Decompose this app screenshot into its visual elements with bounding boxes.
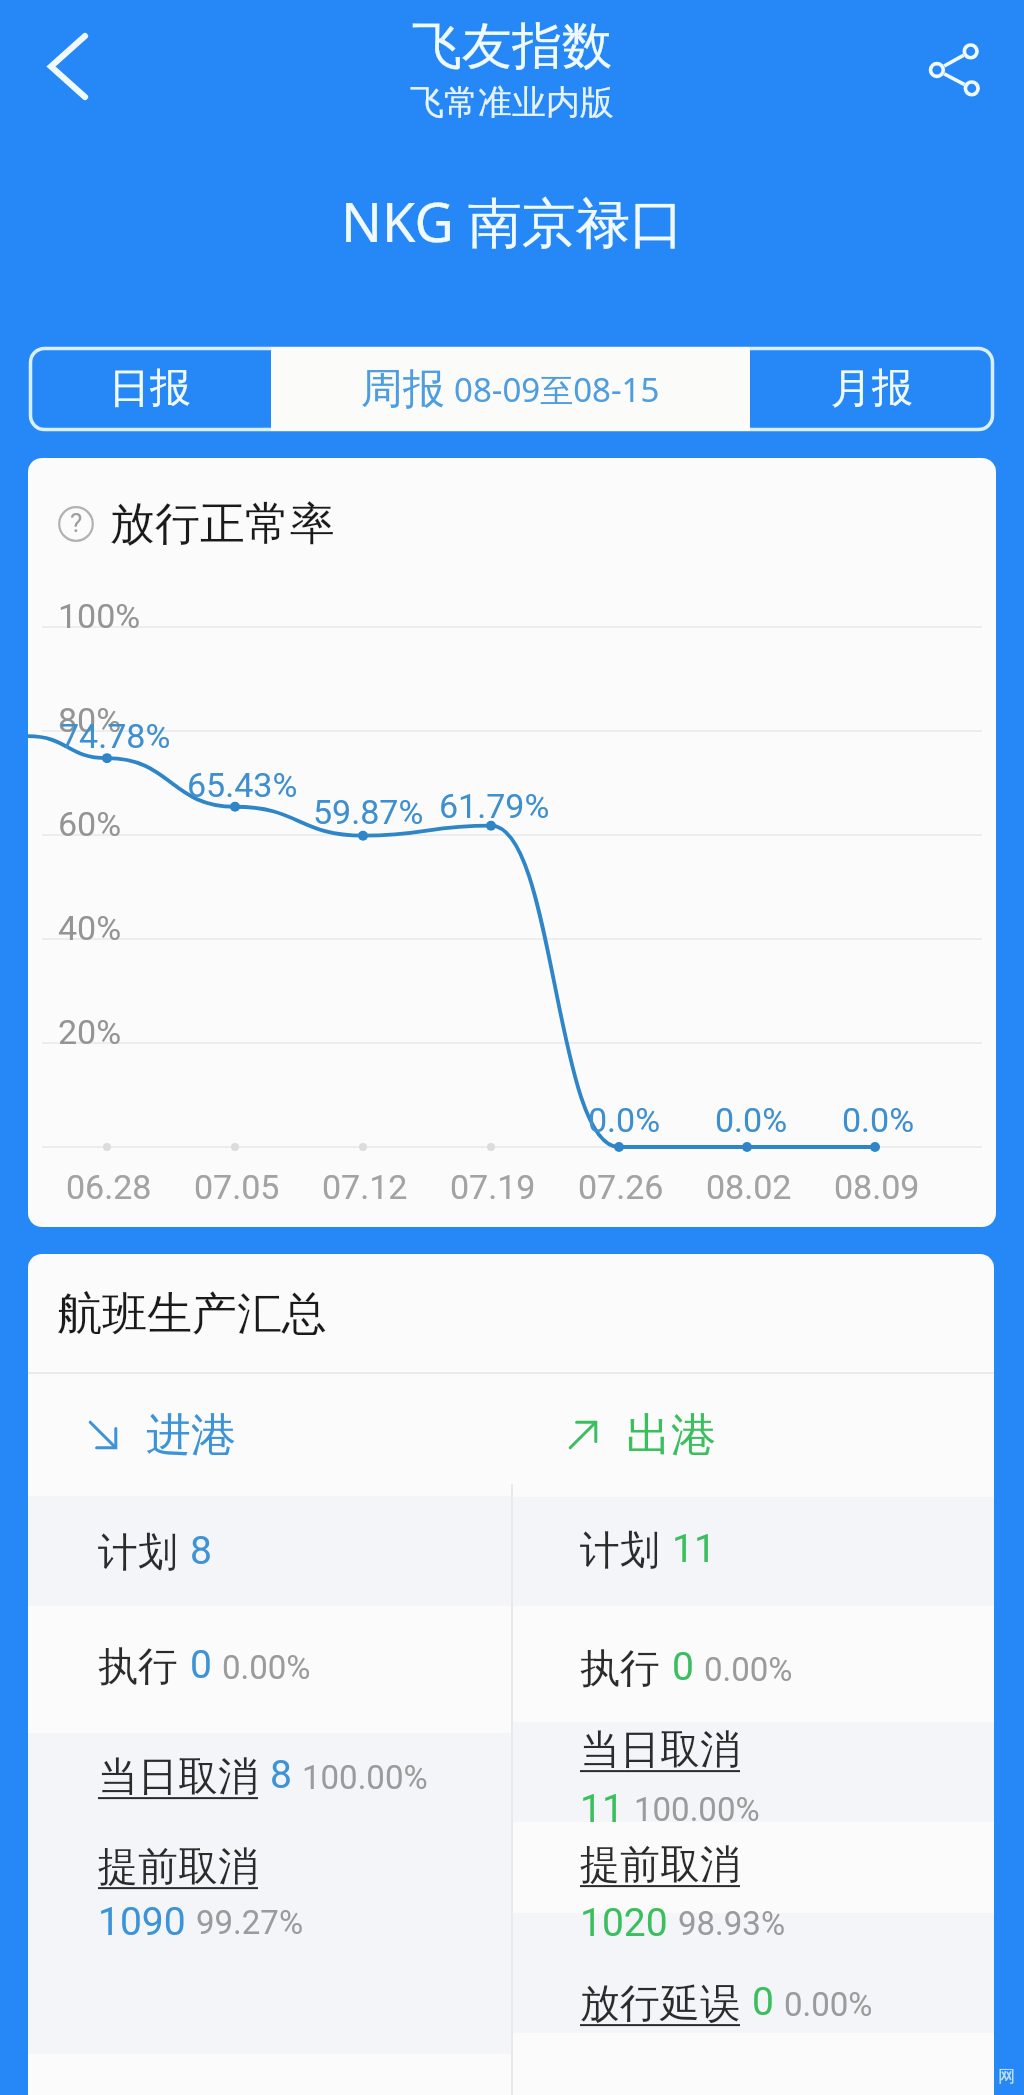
staticText: 1020 — [580, 1900, 668, 1946]
staticText: 当日取消 — [98, 1751, 258, 1801]
staticText: 0.0% — [588, 1100, 661, 1140]
staticText: 提前取消 — [580, 1839, 740, 1889]
staticText: 0 — [672, 1644, 694, 1690]
button[interactable]: 出港 — [563, 1403, 716, 1467]
staticText: 1090 — [98, 1899, 186, 1945]
staticText: 60% — [58, 804, 122, 844]
staticText: 07.12 — [322, 1167, 408, 1207]
staticText: 0.00% — [222, 1648, 311, 1687]
staticText: 0.0% — [842, 1100, 915, 1140]
staticText: 07.05 — [194, 1167, 280, 1207]
staticText: 40% — [58, 908, 122, 948]
staticText: 计划 — [580, 1525, 660, 1575]
staticText: 进港 — [146, 1407, 236, 1464]
button[interactable]: Back — [18, 16, 118, 116]
staticText: 80% — [58, 700, 122, 740]
staticText: 0 — [752, 1979, 774, 2025]
staticText: 11 — [672, 1526, 716, 1572]
staticText: 74.78% — [60, 716, 171, 756]
staticText: 日报 — [109, 363, 191, 415]
button[interactable]: 周报 — [271, 347, 750, 431]
staticText: 当日取消 — [580, 1724, 740, 1774]
staticText: 0.00% — [704, 1650, 793, 1689]
button[interactable]: Share — [900, 15, 1010, 125]
staticText: 执行 — [580, 1643, 660, 1693]
button[interactable]: Help — [58, 506, 94, 542]
staticText: 飞友指数 — [412, 15, 612, 78]
staticText: 航班生产汇总 — [57, 1286, 327, 1343]
staticText: 100% — [58, 596, 141, 636]
button[interactable]: 日报 — [29, 347, 271, 431]
staticText: 98.93% — [678, 1904, 786, 1943]
staticText: 100.00% — [634, 1790, 760, 1829]
staticText: 周报 — [361, 363, 445, 416]
staticText: 11 — [580, 1786, 624, 1832]
staticText: 0.0% — [715, 1100, 788, 1140]
staticText: NKG 南京禄口 — [341, 184, 684, 258]
staticText: 07.26 — [578, 1167, 664, 1207]
staticText: 08.09 — [834, 1167, 920, 1207]
staticText: ? — [70, 508, 83, 538]
staticText: 8 — [190, 1528, 212, 1574]
staticText: 100.00% — [302, 1758, 428, 1797]
staticText: 07.19 — [450, 1167, 536, 1207]
staticText: 计划 — [98, 1527, 178, 1577]
staticText: 61.79% — [439, 786, 550, 826]
staticText: 提前取消 — [98, 1841, 258, 1891]
staticText: 网 — [998, 2066, 1015, 2086]
staticText: 59.87% — [313, 792, 424, 832]
staticText: 8 — [270, 1752, 292, 1798]
staticText: 08-09至08-15 — [454, 367, 660, 412]
staticText: 0.00% — [784, 1985, 873, 2024]
staticText: 月报 — [831, 363, 913, 415]
staticText: 20% — [58, 1012, 122, 1052]
staticText: 65.43% — [187, 765, 298, 805]
staticText: 飞常准业内版 — [410, 81, 614, 124]
staticText: 执行 — [98, 1641, 178, 1691]
staticText: 08.02 — [706, 1167, 792, 1207]
staticText: 0 — [190, 1642, 212, 1688]
button[interactable]: 进港 — [83, 1403, 236, 1467]
staticText: 放行正常率 — [110, 496, 335, 553]
button[interactable]: 月报 — [750, 347, 993, 431]
staticText: 放行延误 — [580, 1978, 740, 2028]
staticText: 出港 — [626, 1407, 716, 1464]
staticText: 06.28 — [66, 1167, 152, 1207]
staticText: 99.27% — [196, 1903, 304, 1942]
